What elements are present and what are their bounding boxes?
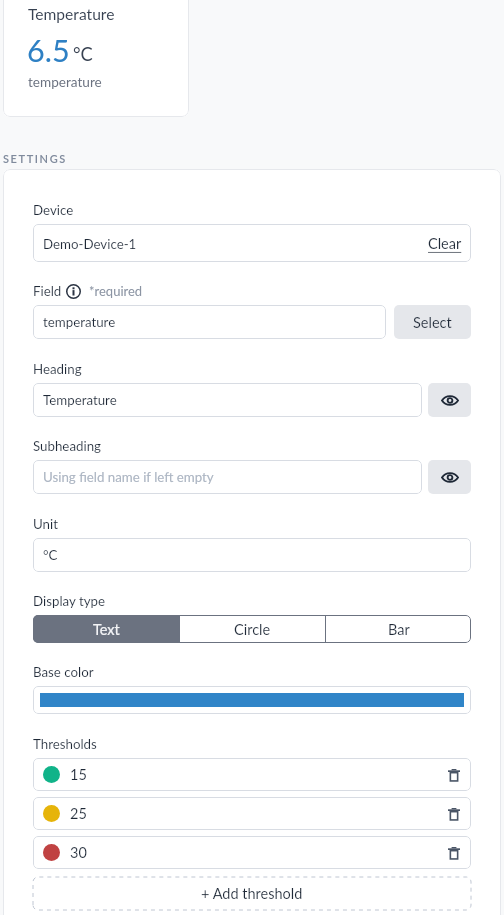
staticText: 25 [70, 805, 87, 822]
button[interactable]: Demo-Device-1 [33, 224, 471, 262]
staticText: temperature [28, 74, 102, 90]
staticText: Base color [33, 664, 94, 680]
button[interactable]: Base color [33, 686, 471, 714]
staticText: Temperature [28, 5, 115, 24]
button[interactable]: Using field name if left empty [33, 460, 422, 494]
button[interactable]: Clear [428, 235, 462, 252]
button[interactable]: Toggle visibility [428, 383, 471, 417]
staticText: 15 [70, 766, 87, 783]
staticText: SETTINGS [3, 152, 67, 165]
button[interactable]: Delete threshold [447, 768, 461, 782]
button[interactable]: Delete threshold [447, 807, 461, 821]
button[interactable]: Select [394, 305, 471, 339]
button[interactable]: Circle [180, 615, 325, 643]
staticText: Field [33, 283, 62, 299]
staticText: temperature [43, 314, 116, 330]
staticText: Using field name if left empty [43, 469, 214, 485]
staticText: Device [33, 202, 74, 218]
staticText: Subheading [33, 438, 101, 454]
staticText: Select [413, 314, 452, 331]
staticText: Temperature [43, 392, 117, 408]
staticText: Bar [388, 621, 410, 638]
button[interactable]: Bar [326, 615, 471, 643]
button[interactable]: Delete threshold [447, 846, 461, 860]
button[interactable]: Toggle visibility [428, 460, 471, 494]
staticText: + Add threshold [201, 885, 303, 902]
staticText: *required [89, 283, 143, 299]
button[interactable]: 15 [33, 758, 471, 791]
button[interactable]: °C [33, 538, 471, 572]
staticText: °C [43, 547, 58, 563]
staticText: 30 [70, 844, 87, 861]
staticText: Circle [234, 621, 271, 638]
staticText: Thresholds [33, 736, 97, 752]
staticText: Demo-Device-1 [43, 236, 137, 252]
staticText: Display type [33, 593, 105, 609]
staticText: Heading [33, 361, 82, 377]
staticText: 6.5 [27, 32, 70, 69]
staticText: Unit [33, 516, 58, 532]
button[interactable]: + Add threshold [33, 877, 471, 910]
staticText: Text [93, 621, 120, 638]
staticText: Clear [428, 235, 462, 252]
button[interactable]: Text [33, 615, 179, 643]
button[interactable]: Temperature [3, 0, 189, 117]
staticText: °C [73, 43, 93, 65]
button[interactable]: 30 [33, 836, 471, 869]
button[interactable]: temperature [33, 305, 386, 339]
button[interactable]: 25 [33, 797, 471, 830]
button[interactable]: Temperature [33, 383, 422, 417]
